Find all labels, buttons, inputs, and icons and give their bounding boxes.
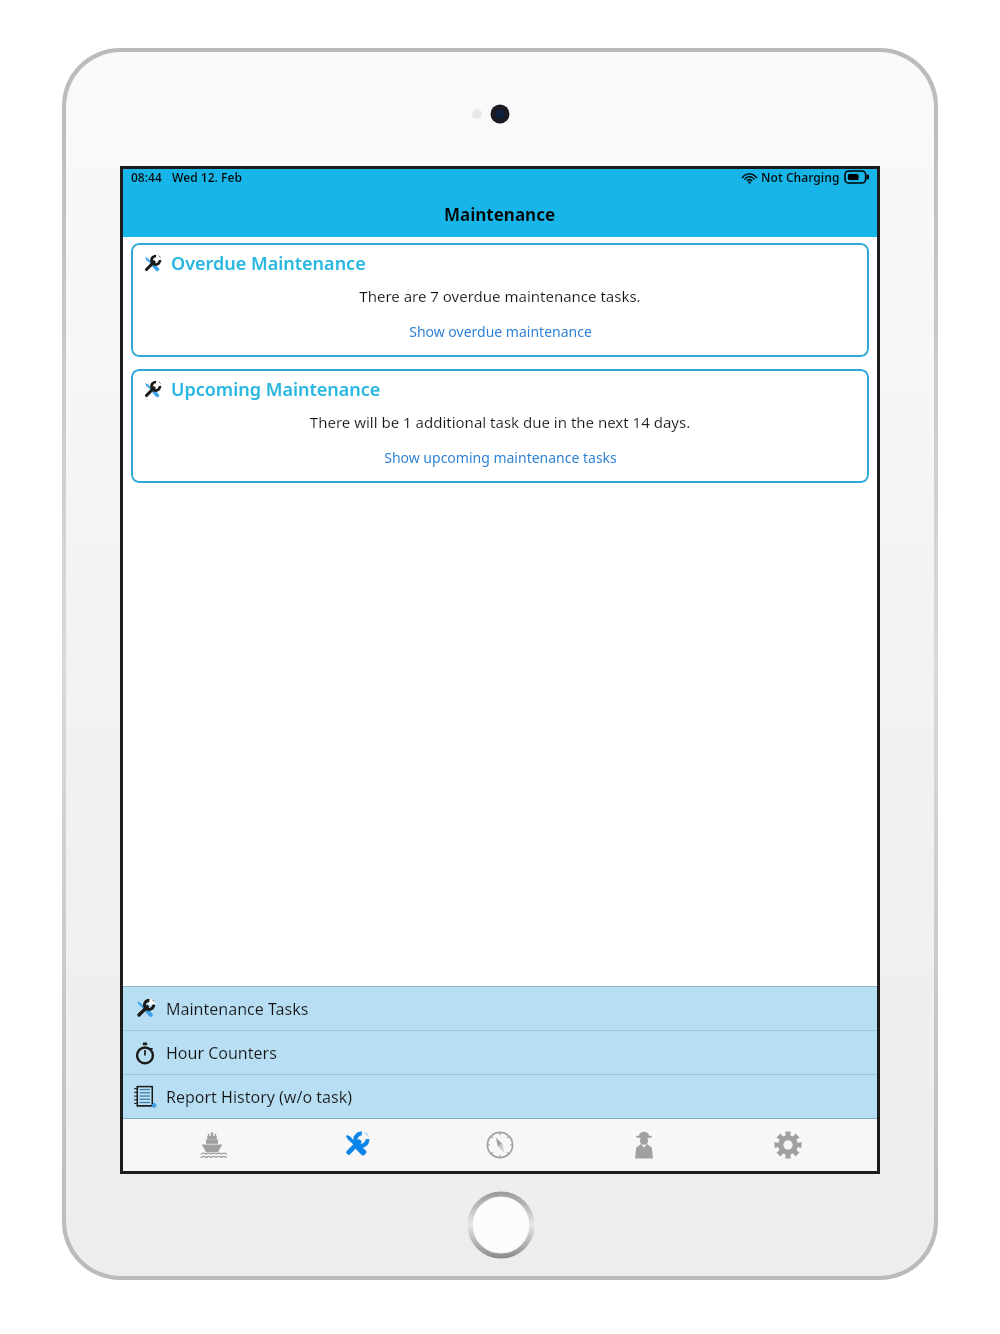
- staticText: Upcoming Maintenance: [171, 377, 381, 402]
- staticText: There will be 1 additional task due in t…: [131, 412, 869, 432]
- button[interactable]: Hour Counters: [123, 1031, 877, 1074]
- button[interactable]: Maintenance: [301, 1119, 411, 1171]
- staticText: Maintenance Tasks: [166, 998, 309, 1020]
- staticText: There are 7 overdue maintenance tasks.: [131, 286, 869, 306]
- staticText: Report History (w/o task): [166, 1086, 353, 1108]
- button[interactable]: Crew: [589, 1119, 699, 1171]
- staticText: Not Charging: [761, 169, 840, 185]
- button[interactable]: Vessel: [157, 1119, 267, 1171]
- button[interactable]: Report History (w/o task): [123, 1075, 877, 1118]
- button[interactable]: Show upcoming maintenance tasks: [131, 448, 869, 467]
- staticText: Show upcoming maintenance tasks: [384, 448, 617, 467]
- staticText: Maintenance: [444, 203, 556, 226]
- button[interactable]: Navigation: [445, 1119, 555, 1171]
- button[interactable]: Maintenance Tasks: [123, 987, 877, 1030]
- button[interactable]: Overdue Maintenance: [131, 243, 869, 357]
- staticText: Show overdue maintenance: [409, 322, 592, 341]
- button[interactable]: Upcoming Maintenance: [131, 369, 869, 483]
- button[interactable]: Settings: [733, 1119, 843, 1171]
- staticText: Overdue Maintenance: [171, 251, 366, 276]
- button[interactable]: Show overdue maintenance: [131, 322, 869, 341]
- staticText: Hour Counters: [166, 1042, 277, 1064]
- staticText: 08:44: [131, 169, 162, 185]
- staticText: Wed 12. Feb: [172, 169, 242, 185]
